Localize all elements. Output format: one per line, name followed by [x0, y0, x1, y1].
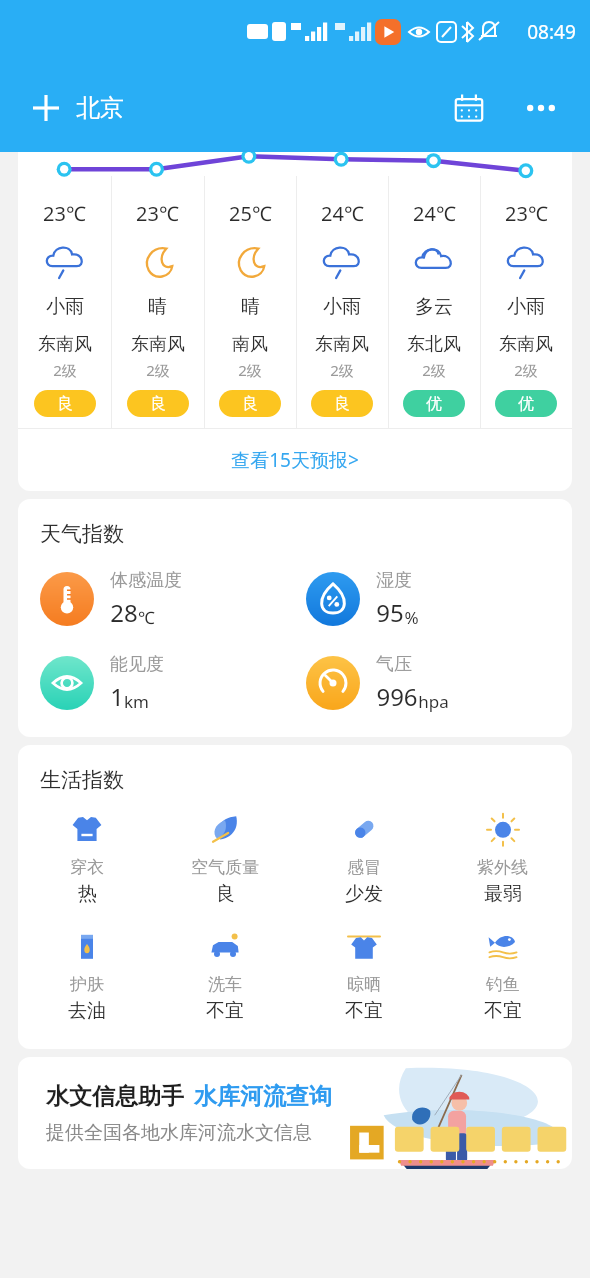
- staticText: 南风: [232, 333, 268, 356]
- staticText: 2级: [238, 360, 262, 380]
- button[interactable]: 水文信息助手: [18, 1057, 572, 1169]
- staticText: 提供全国各地水库河流水文信息: [46, 1121, 312, 1145]
- staticText: 良: [242, 394, 258, 414]
- staticText: 东南风: [499, 333, 553, 356]
- staticText: 水库河流查询: [194, 1082, 332, 1111]
- staticText: 东南风: [315, 333, 369, 356]
- button[interactable]: 23℃: [18, 176, 111, 428]
- staticText: 热: [78, 882, 97, 906]
- staticText: 23℃: [505, 200, 548, 227]
- staticText: 晴: [148, 295, 167, 319]
- staticText: 996: [376, 680, 418, 713]
- button[interactable]: 24℃: [296, 176, 388, 428]
- staticText: 水文信息助手: [46, 1082, 184, 1111]
- button[interactable]: 北京: [76, 93, 124, 123]
- staticText: 最弱: [484, 882, 522, 906]
- staticText: 优: [426, 394, 442, 414]
- staticText: 2级: [514, 360, 538, 380]
- button[interactable]: Calendar: [446, 85, 492, 131]
- staticText: ℃: [138, 606, 155, 629]
- staticText: 不宜: [206, 999, 244, 1023]
- button[interactable]: 气压: [306, 653, 572, 713]
- staticText: hpa: [418, 690, 449, 713]
- button[interactable]: 紫外线: [433, 809, 572, 906]
- button[interactable]: 能见度: [40, 653, 306, 713]
- button[interactable]: 23℃: [480, 176, 572, 428]
- staticText: 查看15天预报>: [231, 447, 359, 473]
- staticText: 东南风: [38, 333, 92, 356]
- staticText: 天气指数: [40, 521, 124, 547]
- button[interactable]: Add city: [26, 88, 66, 128]
- staticText: 95: [376, 596, 404, 629]
- staticText: 良: [57, 394, 73, 414]
- staticText: 晴: [241, 295, 260, 319]
- staticText: 去油: [68, 999, 106, 1023]
- staticText: 紫外线: [477, 857, 528, 878]
- staticText: 少发: [345, 882, 383, 906]
- button[interactable]: 钓鱼: [433, 926, 572, 1023]
- staticText: 气压: [376, 653, 412, 676]
- staticText: 护肤: [70, 974, 104, 995]
- staticText: 2级: [422, 360, 446, 380]
- staticText: 2级: [330, 360, 354, 380]
- staticText: 空气质量: [191, 857, 259, 878]
- button[interactable]: More options: [518, 85, 564, 131]
- staticText: 良: [150, 394, 166, 414]
- button[interactable]: 24℃: [388, 176, 480, 428]
- staticText: 优: [518, 394, 534, 414]
- button[interactable]: 洗车: [156, 926, 294, 1023]
- staticText: 湿度: [376, 569, 412, 592]
- staticText: 24℃: [413, 200, 456, 227]
- button[interactable]: 23℃: [111, 176, 204, 428]
- staticText: 小雨: [323, 295, 361, 319]
- staticText: 生活指数: [40, 767, 124, 793]
- button[interactable]: 感冒: [294, 809, 433, 906]
- staticText: 良: [216, 882, 235, 906]
- staticText: %: [404, 606, 419, 629]
- staticText: 北京: [76, 93, 124, 123]
- staticText: 钓鱼: [486, 974, 520, 995]
- staticText: 不宜: [345, 999, 383, 1023]
- staticText: 23℃: [43, 200, 86, 227]
- button[interactable]: 湿度: [306, 569, 572, 629]
- button[interactable]: 25℃: [204, 176, 296, 428]
- staticText: 小雨: [507, 295, 545, 319]
- staticText: km: [124, 690, 149, 713]
- staticText: 感冒: [347, 857, 381, 878]
- staticText: 25℃: [229, 200, 272, 227]
- staticText: 穿衣: [70, 857, 104, 878]
- staticText: 体感温度: [110, 569, 182, 592]
- staticText: 23℃: [136, 200, 179, 227]
- button[interactable]: 护肤: [18, 926, 156, 1023]
- staticText: 2级: [53, 360, 77, 380]
- staticText: 良: [334, 394, 350, 414]
- staticText: 洗车: [208, 974, 242, 995]
- button[interactable]: 穿衣: [18, 809, 156, 906]
- staticText: 多云: [415, 295, 453, 319]
- staticText: 晾晒: [347, 974, 381, 995]
- button[interactable]: 晾晒: [294, 926, 433, 1023]
- staticText: 28: [110, 596, 138, 629]
- button[interactable]: 查看15天预报>: [18, 429, 572, 491]
- staticText: 东北风: [407, 333, 461, 356]
- staticText: 2级: [146, 360, 170, 380]
- staticText: 不宜: [484, 999, 522, 1023]
- staticText: 东南风: [131, 333, 185, 356]
- staticText: 小雨: [46, 295, 84, 319]
- staticText: 1: [110, 680, 124, 713]
- staticText: 能见度: [110, 653, 164, 676]
- button[interactable]: 体感温度: [40, 569, 306, 629]
- button[interactable]: 空气质量: [156, 809, 294, 906]
- staticText: 24℃: [321, 200, 364, 227]
- staticText: 08:49: [527, 19, 576, 45]
